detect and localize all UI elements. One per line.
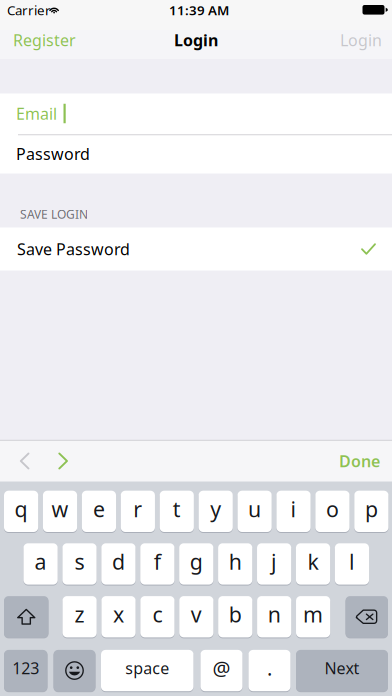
button[interactable]: Delete (345, 596, 388, 638)
button[interactable]: Done (312, 442, 380, 480)
button[interactable]: Shift (4, 596, 48, 638)
staticText: . (267, 655, 272, 681)
staticText: Register (13, 29, 76, 51)
button[interactable]: o (315, 490, 350, 532)
staticText: b (229, 600, 242, 628)
button[interactable]: g (179, 543, 213, 585)
staticText: u (248, 495, 261, 523)
button[interactable]: z (62, 596, 97, 638)
button[interactable]: Previous field (6, 442, 42, 480)
staticText: j (271, 547, 277, 576)
staticText: m (303, 600, 323, 628)
button[interactable]: w (43, 490, 77, 532)
button[interactable]: q (4, 490, 38, 532)
button[interactable]: i (276, 490, 311, 532)
staticText: v (191, 600, 202, 628)
button[interactable]: s (62, 543, 97, 585)
staticText: n (268, 600, 281, 628)
staticText: Next (324, 657, 359, 679)
button[interactable]: Email (16, 93, 392, 133)
button[interactable]: Login (300, 23, 382, 57)
staticText: t (173, 495, 181, 523)
staticText: 11:39 AM (169, 1, 229, 19)
staticText: 123 (12, 657, 39, 679)
button[interactable]: Save Password (17, 227, 376, 270)
staticText: l (349, 547, 355, 576)
button[interactable]: f (140, 543, 174, 585)
button[interactable]: y (199, 490, 233, 532)
staticText: r (133, 495, 142, 523)
staticText: Password (16, 143, 90, 164)
button[interactable]: d (101, 543, 135, 585)
button[interactable]: n (257, 596, 291, 638)
staticText: space (125, 657, 169, 679)
staticText: e (93, 495, 105, 523)
button[interactable]: Password (16, 134, 392, 173)
button[interactable]: . (248, 649, 290, 692)
button[interactable]: Register (13, 23, 95, 57)
button[interactable]: b (218, 596, 252, 638)
button[interactable]: e (82, 490, 116, 532)
staticText: SAVE LOGIN (20, 206, 88, 222)
staticText: o (326, 495, 339, 523)
button[interactable]: Next (296, 649, 388, 692)
staticText: q (15, 495, 28, 523)
staticText: w (51, 495, 68, 523)
staticText: h (229, 547, 242, 576)
staticText: c (152, 600, 162, 628)
staticText: Login (174, 29, 218, 51)
button[interactable]: u (237, 490, 272, 532)
staticText: Carrier (7, 1, 51, 19)
staticText: i (290, 495, 296, 523)
staticText: Email (16, 103, 57, 124)
staticText: Login (340, 29, 382, 51)
button[interactable]: a (23, 543, 58, 585)
button[interactable]: c (140, 596, 174, 638)
button[interactable]: h (218, 543, 252, 585)
button[interactable]: m (296, 596, 330, 638)
button[interactable]: Next field (45, 442, 81, 480)
staticText: a (35, 547, 47, 576)
staticText: g (190, 547, 203, 576)
button[interactable]: r (121, 490, 155, 532)
button[interactable]: l (335, 543, 369, 585)
button[interactable]: p (354, 490, 388, 532)
button[interactable]: x (101, 596, 136, 638)
staticText: d (112, 547, 125, 576)
staticText: @ (212, 655, 230, 681)
staticText: f (154, 547, 161, 576)
staticText: y (210, 495, 221, 523)
staticText: Done (339, 450, 380, 472)
button[interactable]: space (101, 649, 193, 692)
button[interactable]: 123 (4, 649, 47, 692)
button[interactable]: v (179, 596, 213, 638)
button[interactable]: j (257, 543, 291, 585)
button[interactable]: t (160, 490, 194, 532)
button[interactable]: @ (200, 649, 242, 692)
staticText: k (307, 547, 318, 576)
button[interactable]: Emoji (53, 649, 95, 692)
staticText: Save Password (17, 238, 130, 260)
staticText: z (75, 600, 85, 628)
staticText: p (365, 495, 378, 523)
staticText: s (74, 547, 84, 576)
button[interactable]: k (296, 543, 330, 585)
staticText: x (113, 600, 124, 628)
